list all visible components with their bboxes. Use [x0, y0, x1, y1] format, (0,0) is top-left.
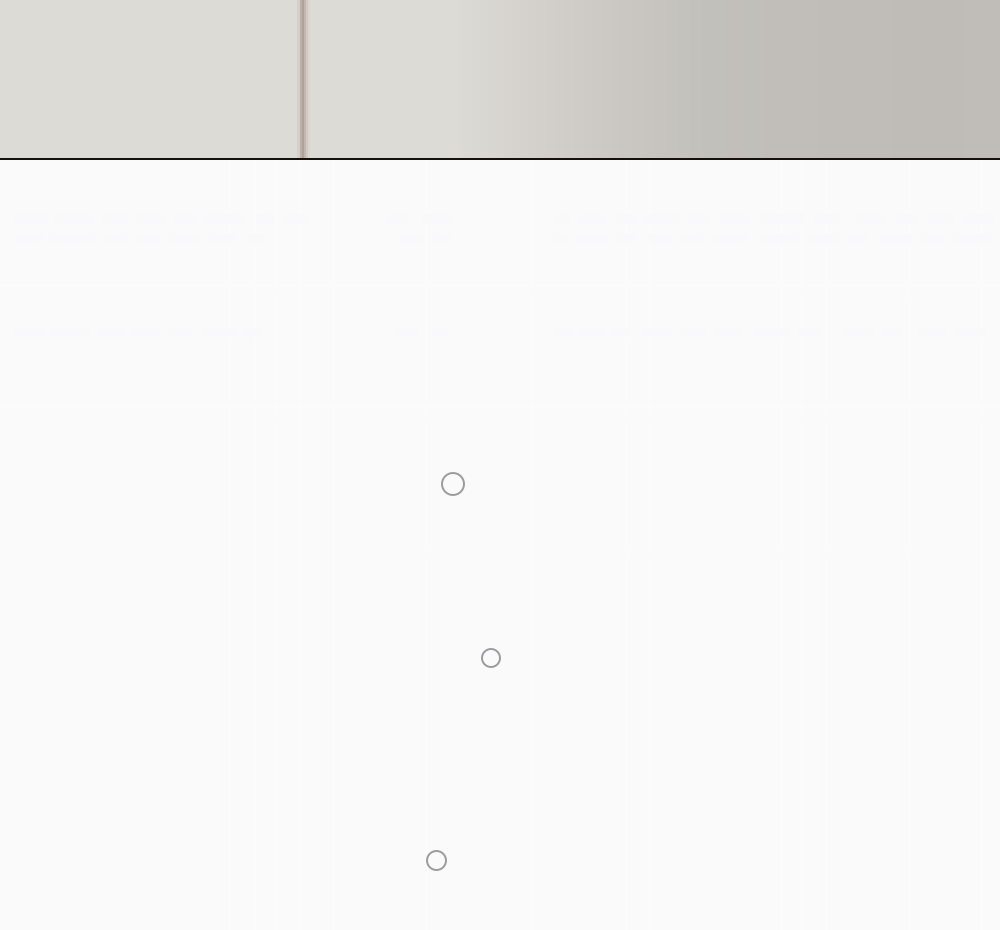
button[interactable]: Select: [482, 649, 500, 667]
button[interactable]: Select: [442, 473, 464, 495]
button[interactable]: Select: [427, 851, 446, 870]
